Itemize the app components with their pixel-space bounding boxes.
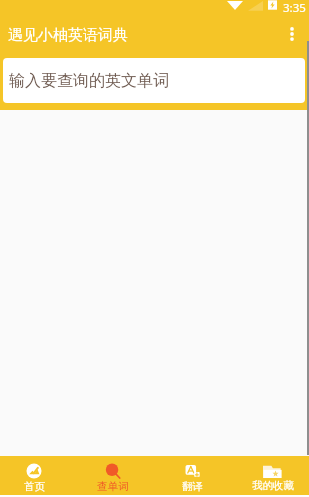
staticText: 遇见小柚英语词典 [8,26,128,45]
staticText: 首页 [24,480,45,493]
staticText: 我的收藏 [252,479,294,492]
staticText: 翻译 [182,480,203,493]
staticText: 3:35 [283,0,306,13]
button[interactable]: More options [275,22,303,50]
button[interactable]: 查单词 [78,458,155,493]
button[interactable]: 首页 [0,458,78,493]
button[interactable]: 我的收藏 [232,459,309,492]
staticText: 查单词 [97,480,129,493]
button[interactable]: 翻译 [155,458,232,493]
staticText: 输入要查询的英文单词 [9,71,169,91]
button[interactable]: 输入要查询的英文单词 [3,58,305,103]
